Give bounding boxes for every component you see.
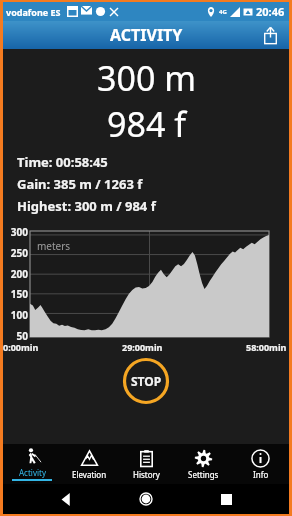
- staticText: 250: [3, 246, 28, 260]
- staticText: 0:00min: [3, 341, 39, 353]
- button[interactable]: Recents: [209, 484, 243, 514]
- staticText: 100: [3, 308, 28, 322]
- staticText: 29:00min: [122, 341, 163, 353]
- staticText: Time: 00:58:45: [17, 153, 108, 171]
- staticText: meters: [37, 239, 71, 253]
- staticText: ACTIVITY: [110, 24, 183, 46]
- staticText: 300 m: [97, 55, 196, 101]
- staticText: Elevation: [72, 469, 107, 480]
- staticText: 4G: [219, 8, 227, 16]
- button[interactable]: Home: [129, 484, 163, 514]
- staticText: 984 f: [107, 101, 186, 147]
- staticText: Activity: [19, 467, 46, 478]
- staticText: History: [133, 469, 160, 480]
- staticText: 300: [3, 225, 28, 239]
- staticText: Info: [253, 469, 269, 480]
- button[interactable]: STOP: [122, 357, 170, 405]
- staticText: 150: [3, 287, 28, 301]
- button[interactable]: Share: [259, 24, 281, 46]
- staticText: 200: [3, 267, 28, 281]
- staticText: Gain: 385 m / 1263 f: [17, 175, 143, 193]
- button[interactable]: Activity: [3, 447, 61, 481]
- staticText: vodafone ES: [6, 6, 61, 18]
- staticText: Highest: 300 m / 984 f: [17, 197, 156, 215]
- staticText: 20:46: [256, 4, 285, 19]
- button[interactable]: Back: [49, 484, 83, 514]
- button[interactable]: Elevation: [61, 449, 118, 480]
- staticText: 50: [3, 329, 28, 343]
- button[interactable]: Info: [232, 449, 289, 480]
- button[interactable]: History: [118, 449, 175, 480]
- button[interactable]: Settings: [175, 449, 232, 480]
- staticText: Settings: [188, 469, 219, 480]
- staticText: 58:00min: [246, 341, 287, 353]
- staticText: STOP: [131, 373, 162, 389]
